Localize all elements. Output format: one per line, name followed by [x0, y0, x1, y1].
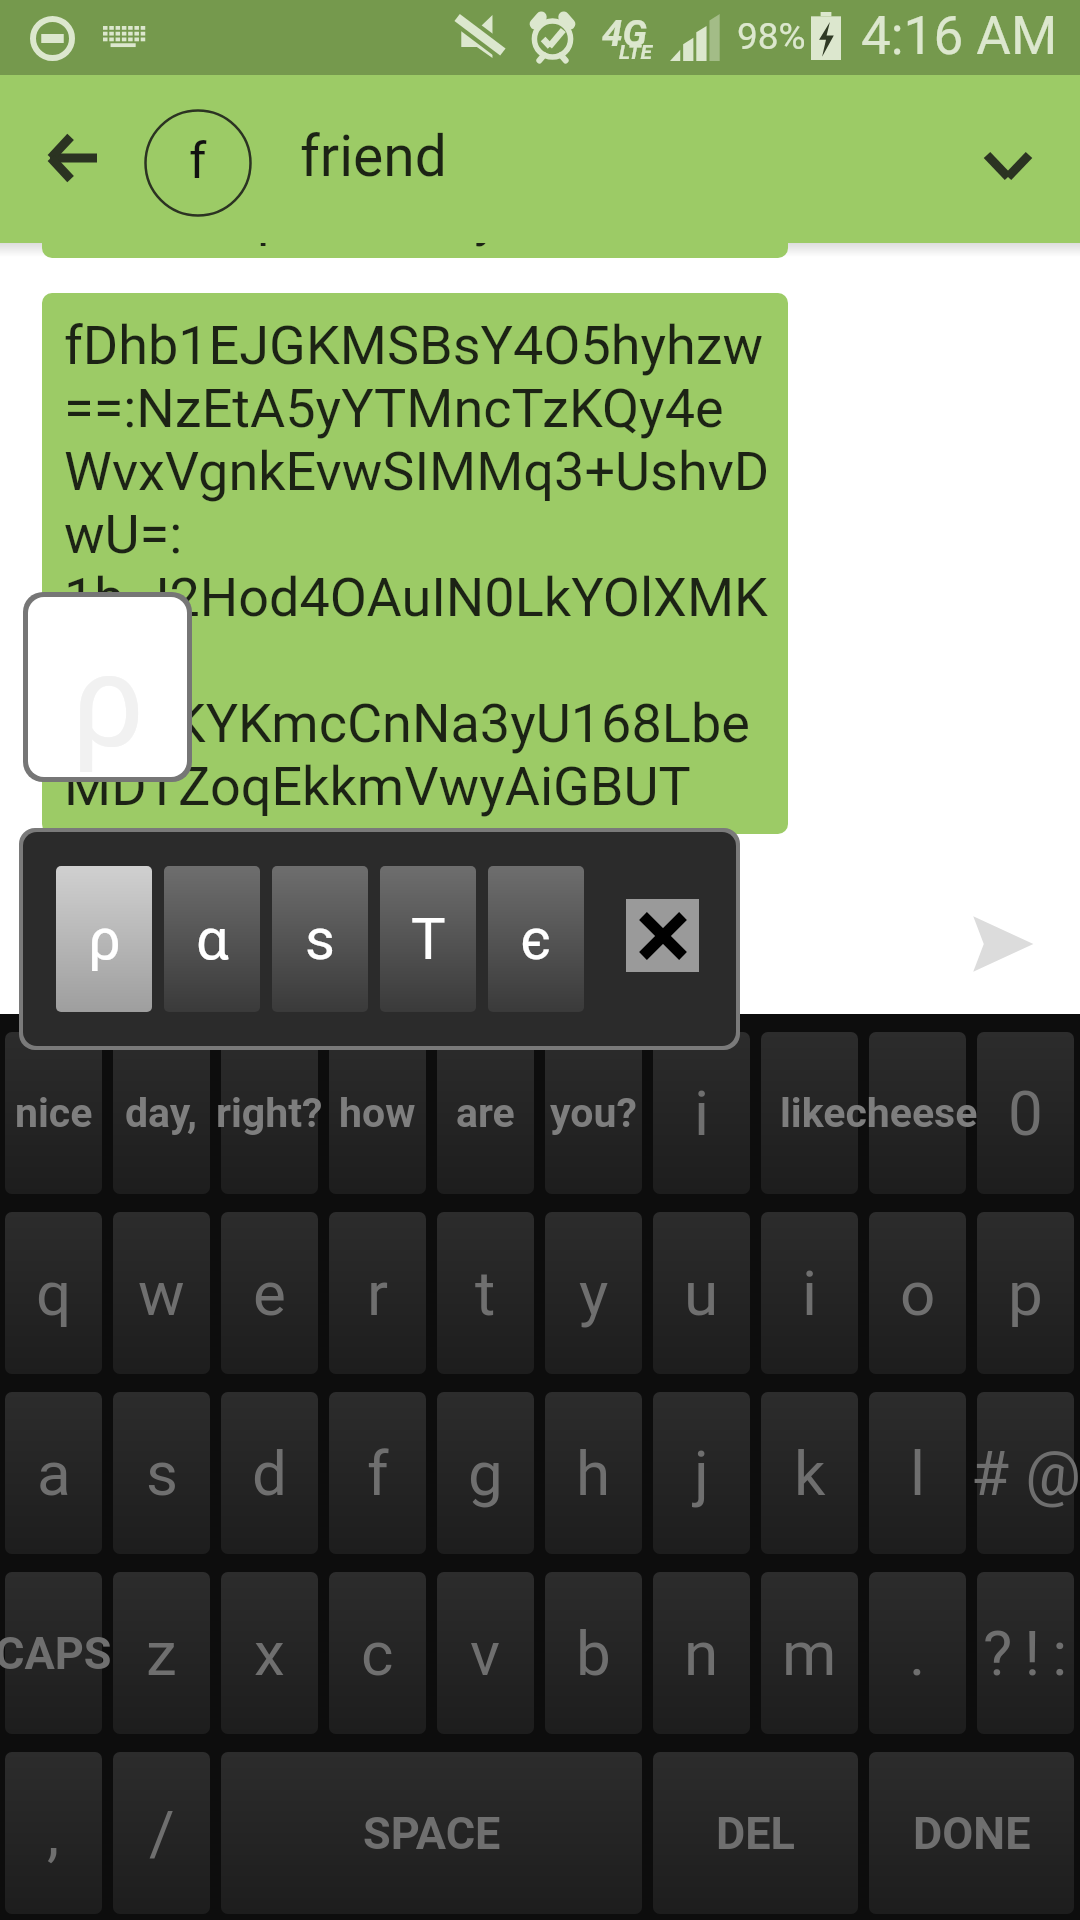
- staticText: t: [475, 1257, 496, 1330]
- staticText: p: [257, 243, 288, 248]
- button[interactable]: T: [380, 866, 476, 1012]
- button[interactable]: [221, 1392, 318, 1554]
- staticText: i: [802, 1257, 818, 1330]
- staticText: e: [253, 1257, 286, 1330]
- button[interactable]: Back: [10, 100, 140, 220]
- staticText: friend: [300, 123, 447, 190]
- button[interactable]: [653, 1572, 750, 1734]
- button[interactable]: f: [144, 109, 252, 217]
- button[interactable]: [437, 1572, 534, 1734]
- button[interactable]: [437, 1032, 534, 1194]
- button[interactable]: Close: [626, 899, 699, 972]
- staticText: y: [579, 1257, 609, 1330]
- button[interactable]: [221, 1212, 318, 1374]
- button[interactable]: α: [164, 866, 260, 1012]
- button[interactable]: [5, 1752, 102, 1914]
- button[interactable]: [761, 1212, 858, 1374]
- button[interactable]: s: [272, 866, 368, 1012]
- staticText: l: [910, 1437, 926, 1510]
- staticText: ?!:: [983, 1617, 1080, 1690]
- staticText: T: [411, 905, 446, 973]
- button[interactable]: [113, 1212, 210, 1374]
- staticText: 0: [1008, 1077, 1043, 1150]
- button[interactable]: [113, 1752, 210, 1914]
- button[interactable]: [869, 1752, 1074, 1914]
- button[interactable]: є: [488, 866, 584, 1012]
- button[interactable]: [761, 1572, 858, 1734]
- button[interactable]: [869, 1032, 966, 1194]
- button[interactable]: [113, 1032, 210, 1194]
- staticText: y: [474, 243, 500, 248]
- button[interactable]: [653, 1032, 750, 1194]
- staticText: o: [900, 1257, 936, 1330]
- button[interactable]: [329, 1032, 426, 1194]
- button[interactable]: [545, 1572, 642, 1734]
- staticText: right?: [216, 1089, 323, 1137]
- button[interactable]: [113, 1392, 210, 1554]
- button[interactable]: [869, 1212, 966, 1374]
- button[interactable]: Send: [930, 870, 1075, 1014]
- button[interactable]: [545, 1032, 642, 1194]
- staticText: DEL: [716, 1807, 795, 1860]
- staticText: α: [196, 905, 229, 973]
- button[interactable]: [545, 1212, 642, 1374]
- button[interactable]: [329, 1392, 426, 1554]
- staticText: r: [367, 1257, 389, 1330]
- button[interactable]: [329, 1572, 426, 1734]
- button[interactable]: [437, 1212, 534, 1374]
- button[interactable]: [977, 1032, 1074, 1194]
- staticText: how: [339, 1089, 416, 1137]
- button[interactable]: [329, 1212, 426, 1374]
- staticText: .: [909, 1617, 926, 1690]
- staticText: CAPS: [0, 1627, 112, 1680]
- staticText: #@: [971, 1437, 1080, 1510]
- button[interactable]: Expand conversation details: [940, 100, 1070, 220]
- staticText: g: [468, 1437, 503, 1510]
- button[interactable]: [653, 1392, 750, 1554]
- staticText: p: [1008, 1257, 1043, 1330]
- staticText: day,: [125, 1089, 198, 1137]
- staticText: DONE: [913, 1807, 1031, 1860]
- staticText: h: [576, 1437, 611, 1510]
- button[interactable]: [221, 1572, 318, 1734]
- button[interactable]: [545, 1392, 642, 1554]
- staticText: likecheese: [780, 1089, 978, 1137]
- staticText: ,: [47, 1797, 60, 1870]
- staticText: f: [189, 132, 207, 191]
- button[interactable]: [761, 1032, 858, 1194]
- button[interactable]: ρ: [56, 866, 152, 1012]
- staticText: j: [694, 1437, 709, 1510]
- button[interactable]: [977, 1392, 1074, 1554]
- staticText: 98%: [737, 15, 806, 58]
- staticText: fDhb1EJGKMSBsY4O5hyhzw ==:NzEtA5yYTMncTz…: [64, 314, 770, 818]
- staticText: є: [520, 905, 552, 973]
- button[interactable]: [5, 1032, 102, 1194]
- staticText: b: [576, 1617, 611, 1690]
- staticText: v: [470, 1617, 501, 1690]
- staticText: you?: [550, 1089, 637, 1137]
- button[interactable]: [221, 1032, 318, 1194]
- staticText: c: [361, 1617, 394, 1690]
- button[interactable]: [977, 1572, 1074, 1734]
- button[interactable]: [869, 1392, 966, 1554]
- button[interactable]: [221, 1752, 642, 1914]
- button[interactable]: [977, 1212, 1074, 1374]
- button[interactable]: [653, 1752, 858, 1914]
- button[interactable]: [761, 1392, 858, 1554]
- staticText: n: [684, 1617, 719, 1690]
- staticText: i: [694, 1077, 710, 1150]
- button[interactable]: [5, 1572, 102, 1734]
- button[interactable]: [653, 1212, 750, 1374]
- button[interactable]: [113, 1572, 210, 1734]
- button[interactable]: [437, 1392, 534, 1554]
- staticText: q: [36, 1257, 72, 1330]
- button[interactable]: [869, 1572, 966, 1734]
- button[interactable]: [5, 1212, 102, 1374]
- staticText: k: [794, 1437, 826, 1510]
- staticText: ρ: [88, 905, 121, 973]
- staticText: z: [146, 1617, 177, 1690]
- staticText: ρ: [71, 625, 145, 777]
- button[interactable]: [5, 1392, 102, 1554]
- staticText: f: [367, 1437, 389, 1510]
- staticText: d: [252, 1437, 287, 1510]
